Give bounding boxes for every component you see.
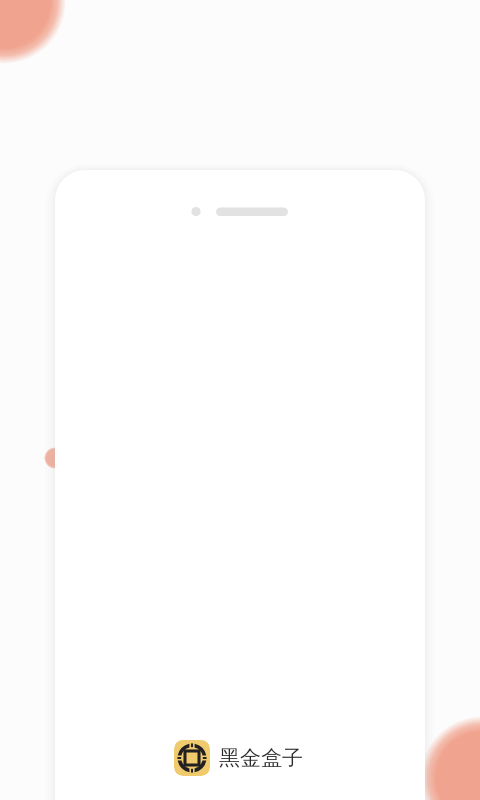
staticText: 黑金盒子 [219, 745, 303, 771]
button[interactable]: 黑金盒子 [174, 740, 303, 776]
